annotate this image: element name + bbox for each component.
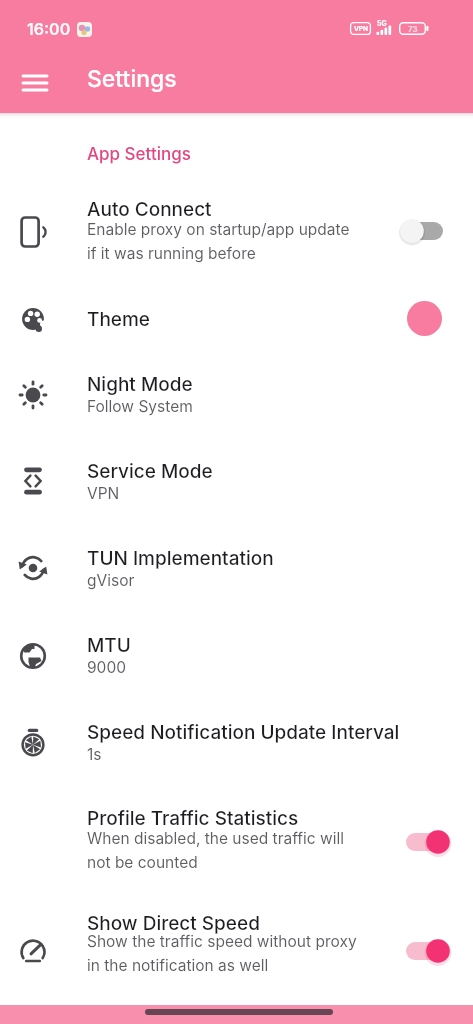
- staticText: MTU: [87, 634, 131, 657]
- button[interactable]: [16, 69, 56, 109]
- button[interactable]: [407, 301, 442, 336]
- staticText: in the notification as well: [87, 956, 269, 975]
- button[interactable]: Auto Connect: [0, 186, 473, 297]
- staticText: not be counted: [87, 853, 198, 872]
- button[interactable]: Night Mode: [0, 361, 473, 448]
- button[interactable]: [403, 827, 449, 857]
- staticText: App Settings: [87, 144, 191, 165]
- staticText: Speed Notification Update Interval: [87, 721, 400, 744]
- staticText: TUN Implementation: [87, 547, 274, 570]
- staticText: 9000: [87, 658, 126, 677]
- staticText: Show the traffic speed without proxy: [87, 932, 357, 951]
- staticText: Profile Traffic Statistics: [87, 807, 299, 830]
- button[interactable]: MTU: [0, 622, 473, 709]
- staticText: Enable proxy on startup/app update: [87, 220, 350, 239]
- staticText: if it was running before: [87, 244, 256, 263]
- staticText: Service Mode: [87, 460, 213, 483]
- button[interactable]: Speed Notification Update Interval: [0, 709, 473, 796]
- staticText: VPN: [87, 484, 120, 503]
- button[interactable]: [145, 1009, 333, 1015]
- staticText: Auto Connect: [87, 198, 212, 221]
- staticText: VPN: [354, 25, 369, 33]
- staticText: gVisor: [87, 571, 135, 590]
- button[interactable]: Show Direct Speed: [0, 900, 473, 1005]
- button[interactable]: [403, 936, 449, 966]
- staticText: Settings: [87, 65, 177, 93]
- button[interactable]: Theme: [0, 297, 473, 361]
- staticText: Theme: [87, 308, 151, 331]
- staticText: Follow System: [87, 397, 193, 416]
- staticText: 1s: [87, 745, 102, 764]
- staticText: 73: [408, 24, 418, 34]
- button[interactable]: TUN Implementation: [0, 535, 473, 622]
- button[interactable]: [403, 216, 449, 246]
- staticText: Show Direct Speed: [87, 912, 260, 935]
- staticText: When disabled, the used traffic will: [87, 829, 344, 848]
- staticText: 5G: [377, 19, 387, 27]
- button[interactable]: Service Mode: [0, 448, 473, 535]
- staticText: Night Mode: [87, 373, 193, 396]
- button[interactable]: Profile Traffic Statistics: [0, 796, 473, 900]
- staticText: 16:00: [27, 19, 71, 38]
